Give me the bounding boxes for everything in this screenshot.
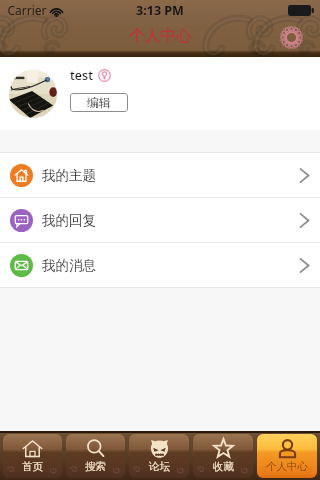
staticText: Carrier <box>7 2 47 18</box>
staticText: 首页 <box>22 460 43 473</box>
button[interactable]: 收藏 <box>193 434 253 478</box>
staticText: test <box>70 67 93 84</box>
button[interactable]: 个人中心 <box>257 434 317 478</box>
button[interactable]: 搜索 <box>66 434 125 478</box>
button[interactable]: Ornament <box>281 27 302 48</box>
other: WiFi <box>50 6 63 17</box>
button[interactable]: 首页 <box>3 434 62 478</box>
button[interactable]: 我的回复 <box>0 198 320 242</box>
staticText: 收藏 <box>213 460 234 473</box>
button[interactable]: 论坛 <box>129 434 189 478</box>
button[interactable]: test <box>0 57 320 130</box>
button[interactable]: 我的主题 <box>0 153 320 197</box>
staticText: 我的回复 <box>42 212 96 229</box>
staticText: 个人中心 <box>129 26 191 46</box>
staticText: 编辑 <box>87 95 111 110</box>
staticText: 3:13 PM <box>136 2 184 19</box>
staticText: 搜索 <box>85 460 106 473</box>
staticText: 我的主题 <box>42 167 96 184</box>
staticText: 我的消息 <box>42 257 96 274</box>
button[interactable]: 编辑 <box>70 93 128 112</box>
other: Battery <box>288 5 314 16</box>
staticText: 论坛 <box>149 460 170 473</box>
button[interactable]: 我的消息 <box>0 243 320 287</box>
staticText: 个人中心 <box>266 460 308 473</box>
